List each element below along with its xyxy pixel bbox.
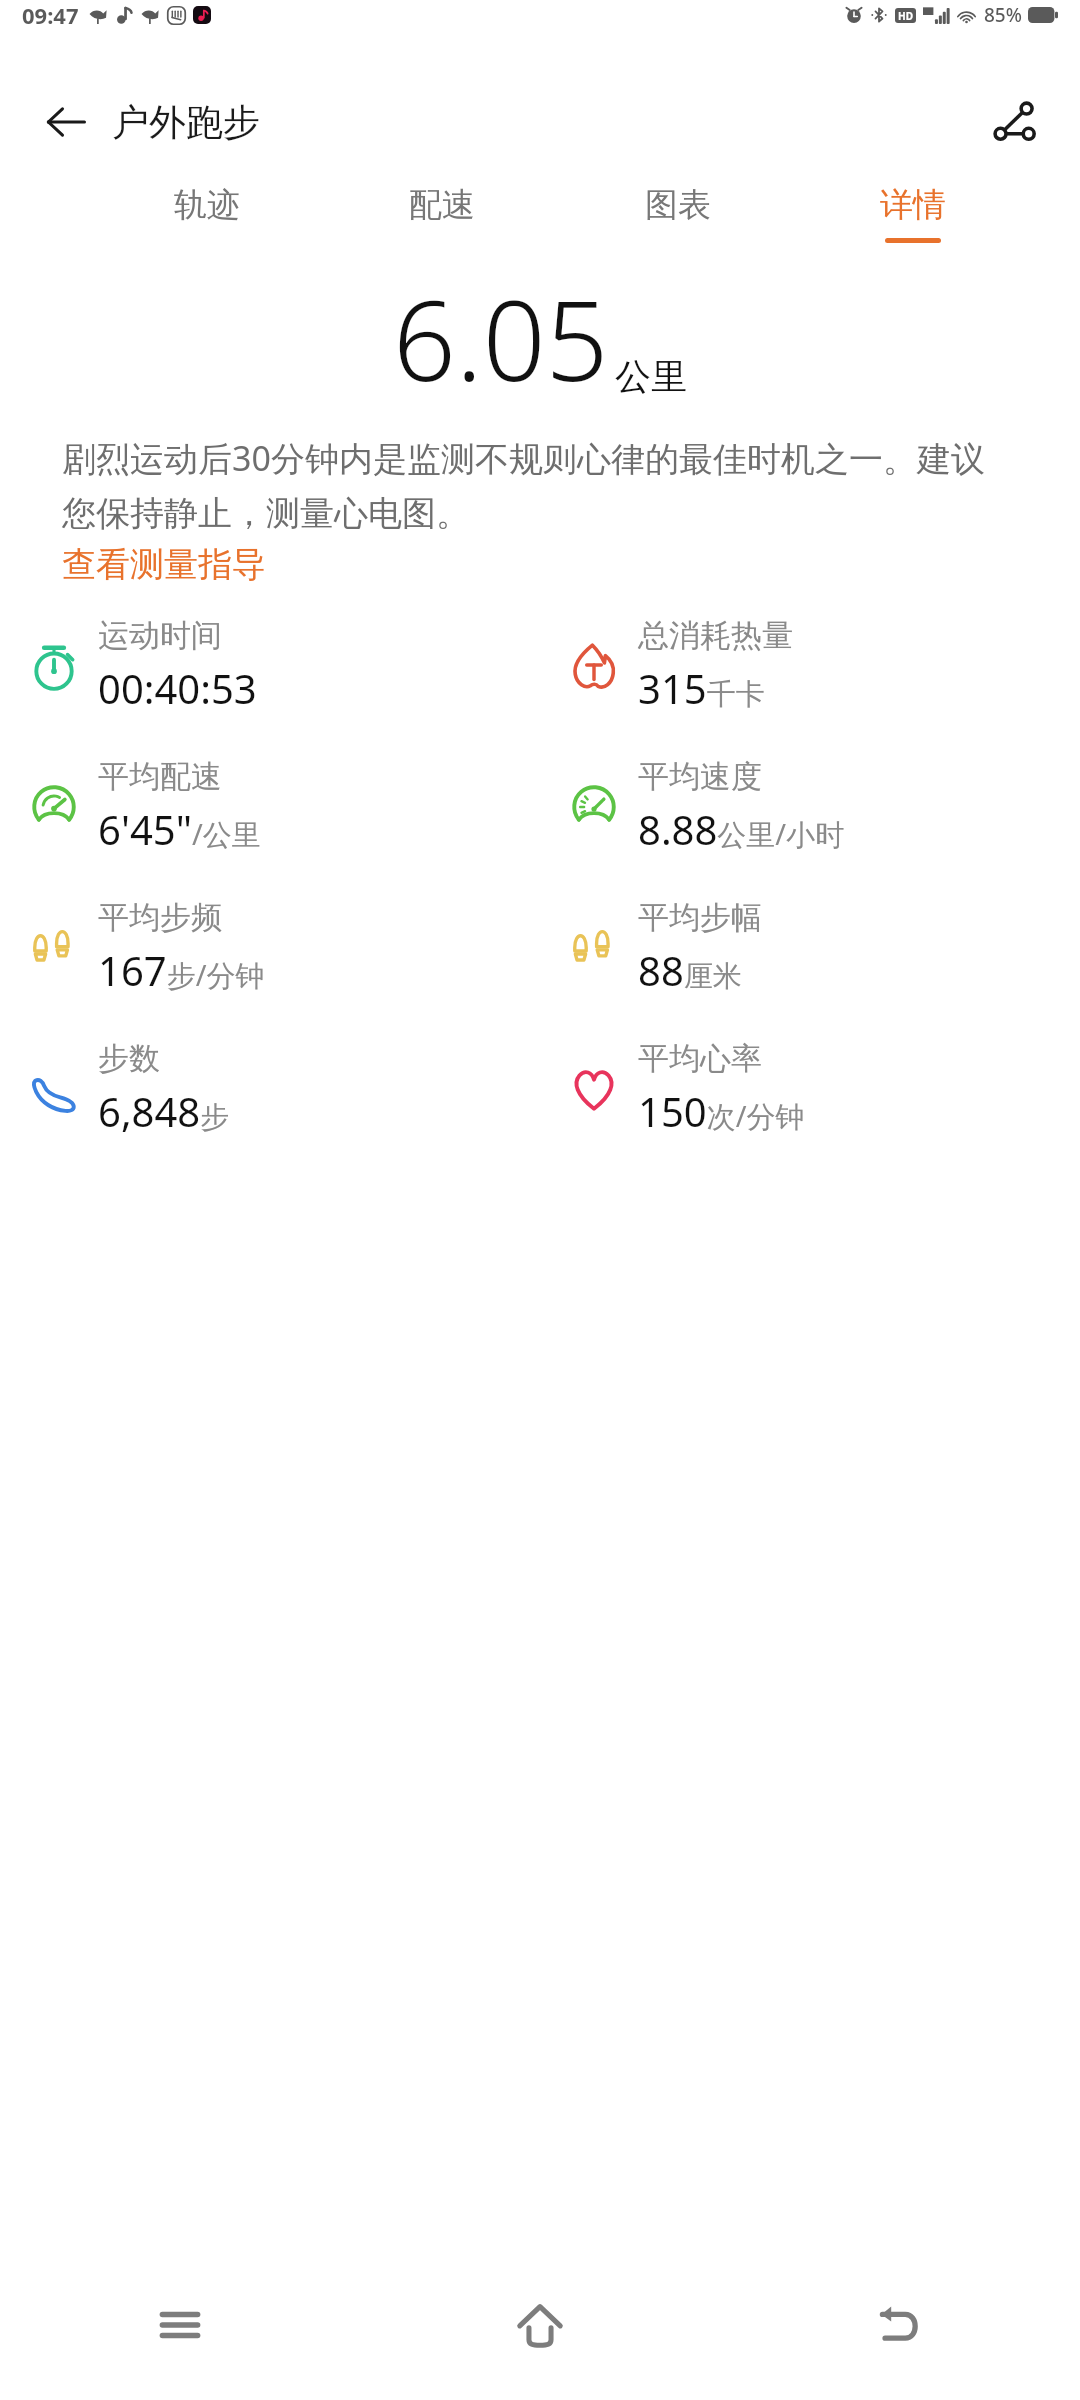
button[interactable]: Share <box>982 90 1046 154</box>
button[interactable]: 轨迹 <box>170 182 244 245</box>
staticText: 315千卡 <box>638 661 765 715</box>
staticText: 运动时间 <box>98 616 222 655</box>
button[interactable]: 图表 <box>641 182 715 245</box>
button[interactable]: 运动时间 <box>0 616 540 715</box>
staticText: 平均速度 <box>638 757 762 796</box>
staticText: HD <box>898 9 913 23</box>
button[interactable]: 平均配速 <box>0 757 540 856</box>
staticText: 剧烈运动后30分钟内是监测不规则心律的最佳时机之一。建议您保持静止，测量心电图。 <box>62 435 1018 535</box>
button[interactable]: 详情 <box>876 182 950 245</box>
staticText: 00:40:53 <box>98 661 257 715</box>
staticText: 150次/分钟 <box>638 1084 805 1138</box>
button[interactable]: Back <box>845 2270 955 2380</box>
staticText: 88厘米 <box>638 943 742 997</box>
button[interactable]: Back <box>34 90 98 154</box>
staticText: 8.88公里/小时 <box>638 802 845 856</box>
staticText: 总消耗热量 <box>638 616 793 655</box>
staticText: 平均心率 <box>638 1039 762 1078</box>
staticText: 详情 <box>880 184 946 226</box>
button[interactable]: 总消耗热量 <box>540 616 1080 715</box>
staticText: 图表 <box>645 184 711 226</box>
staticText: 步数 <box>98 1039 160 1078</box>
staticText: 配速 <box>409 184 475 226</box>
staticText: 户外跑步 <box>112 99 260 146</box>
button[interactable]: 平均步幅 <box>540 898 1080 997</box>
staticText: 6,848步 <box>98 1084 230 1138</box>
button[interactable]: 平均心率 <box>540 1039 1080 1138</box>
staticText: 6.05 <box>393 263 609 413</box>
button[interactable]: 查看测量指导 <box>62 543 266 586</box>
button[interactable]: 配速 <box>405 182 479 245</box>
button[interactable]: Home <box>485 2270 595 2380</box>
staticText: 平均步频 <box>98 898 222 937</box>
staticText: 平均步幅 <box>638 898 762 937</box>
staticText: 公里 <box>615 354 687 399</box>
staticText: 6'45"/公里 <box>98 802 261 856</box>
staticText: 查看测量指导 <box>62 543 266 586</box>
button[interactable]: 平均步频 <box>0 898 540 997</box>
button[interactable]: 平均速度 <box>540 757 1080 856</box>
staticText: 轨迹 <box>174 184 240 226</box>
staticText: 85% <box>984 2 1022 28</box>
staticText: 09:47 <box>22 0 79 30</box>
button[interactable]: 步数 <box>0 1039 540 1138</box>
staticText: 167步/分钟 <box>98 943 265 997</box>
staticText: 平均配速 <box>98 757 222 796</box>
button[interactable]: Recent apps <box>125 2270 235 2380</box>
